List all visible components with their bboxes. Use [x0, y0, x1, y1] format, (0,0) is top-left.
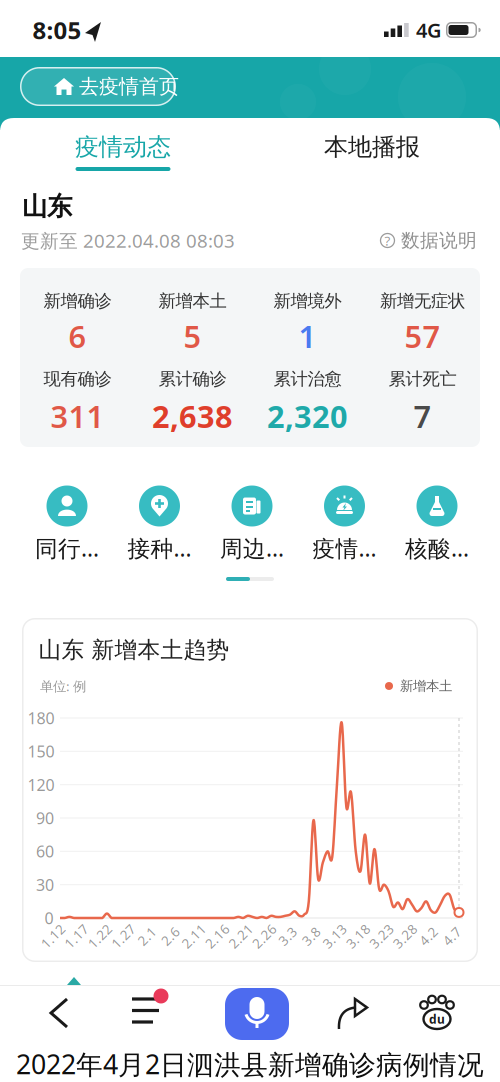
staticText: 7: [413, 396, 431, 436]
button[interactable]: 同行...: [25, 485, 109, 565]
staticText: 3.13: [321, 927, 349, 945]
staticText: 5: [183, 316, 201, 356]
button[interactable]: Share: [336, 994, 370, 1030]
button[interactable]: 去疫情首页: [20, 67, 176, 106]
staticText: 数据说明: [401, 229, 477, 252]
staticText: 新增确诊: [43, 290, 111, 312]
staticText: 新增本土: [400, 678, 452, 694]
button[interactable]: 接种...: [117, 485, 201, 565]
staticText: 去疫情首页: [79, 74, 179, 99]
staticText: 90: [36, 807, 54, 829]
button[interactable]: ?: [380, 231, 478, 250]
button[interactable]: Baidu home: [419, 993, 455, 1031]
staticText: du: [429, 1011, 445, 1027]
staticText: 2,320: [267, 396, 348, 436]
staticText: 4G: [416, 17, 442, 43]
staticText: 4.2: [418, 927, 438, 945]
staticText: 1.12: [39, 927, 67, 945]
staticText: 2.21: [227, 927, 255, 945]
staticText: 单位: 例: [40, 677, 86, 695]
staticText: 同行...: [35, 533, 99, 563]
staticText: 疫情动态: [75, 132, 171, 162]
staticText: 新增本土: [158, 290, 226, 312]
staticText: 2.1: [137, 927, 157, 945]
staticText: 更新至 2022.04.08 08:03: [21, 228, 235, 253]
button[interactable]: 疫情...: [302, 485, 386, 565]
staticText: 4.7: [442, 927, 462, 945]
staticText: 1.22: [86, 927, 114, 945]
button[interactable]: Menu: [130, 994, 170, 1026]
staticText: 0: [44, 907, 53, 929]
staticText: 累计治愈: [273, 368, 341, 390]
staticText: 60: [36, 841, 54, 862]
staticText: 本地播报: [324, 132, 420, 162]
staticText: 3.8: [301, 927, 321, 945]
staticText: 3.28: [391, 927, 419, 945]
staticText: 180: [27, 707, 54, 729]
staticText: 山东: [22, 191, 72, 222]
staticText: 1.17: [62, 927, 90, 945]
staticText: 核酸...: [405, 533, 469, 563]
staticText: 接种...: [127, 533, 191, 563]
staticText: 累计死亡: [388, 368, 456, 390]
staticText: 2022年4月2日泗洪县新增确诊病例情况: [16, 1046, 484, 1082]
staticText: 2.6: [160, 927, 180, 945]
staticText: 新增无症状: [380, 290, 465, 312]
staticText: 2.16: [203, 927, 231, 945]
staticText: 30: [36, 874, 54, 895]
staticText: 疫情...: [312, 533, 376, 563]
staticText: 累计确诊: [158, 368, 226, 390]
staticText: 2.26: [250, 927, 278, 945]
staticText: 山东 新增本土趋势: [38, 636, 229, 664]
staticText: 新增境外: [273, 290, 341, 312]
staticText: 周边...: [220, 533, 284, 563]
staticText: 6: [68, 316, 86, 356]
staticText: ?: [384, 232, 390, 249]
button[interactable]: Voice search: [225, 988, 289, 1040]
staticText: 2,638: [152, 396, 233, 436]
staticText: 3.23: [368, 927, 396, 945]
staticText: 311: [50, 396, 104, 436]
button[interactable]: 本地播报: [249, 123, 495, 171]
staticText: 1.27: [109, 927, 137, 945]
button[interactable]: 疫情动态: [0, 123, 246, 171]
staticText: 150: [27, 741, 54, 762]
button[interactable]: 核酸...: [395, 485, 479, 565]
button[interactable]: 周边...: [210, 485, 294, 565]
staticText: 1: [298, 316, 316, 356]
staticText: 120: [27, 774, 54, 795]
staticText: 2.11: [180, 927, 208, 945]
button[interactable]: Back: [49, 998, 69, 1028]
staticText: 现有确诊: [43, 368, 111, 390]
staticText: 3.18: [344, 927, 372, 945]
staticText: 57: [404, 316, 440, 356]
staticText: 8:05: [32, 14, 81, 46]
staticText: 3.3: [278, 927, 298, 945]
